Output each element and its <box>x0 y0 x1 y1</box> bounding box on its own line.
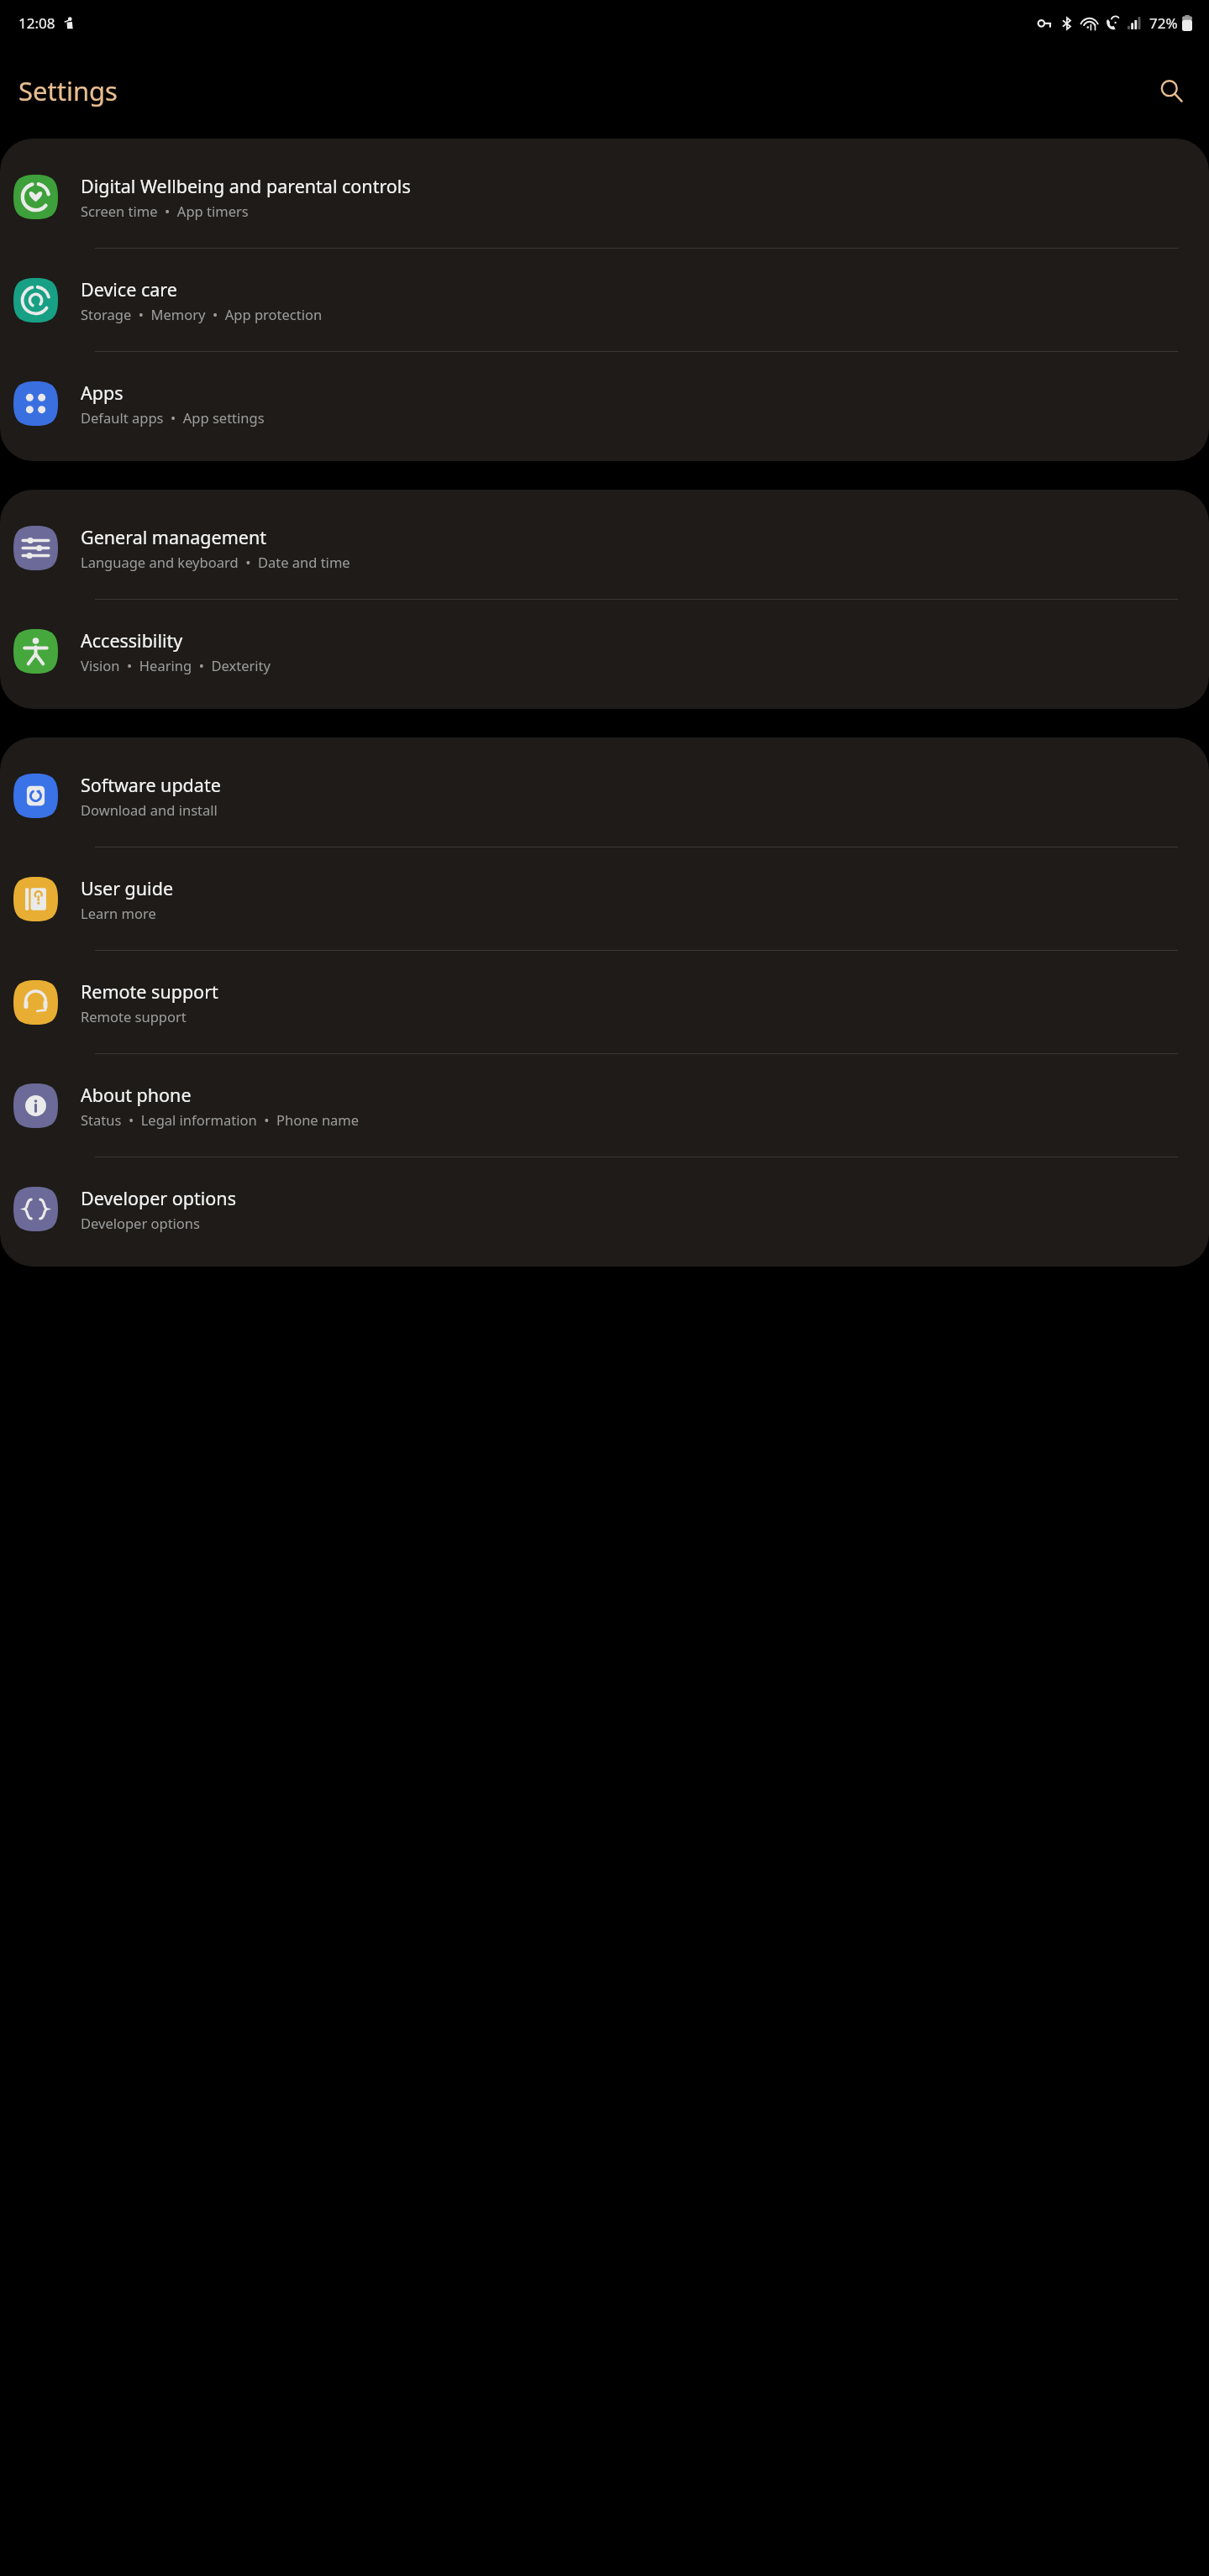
staticText: About phone <box>81 1083 192 1107</box>
button[interactable]: About phone <box>0 1054 1209 1157</box>
staticText: Remote support <box>81 979 218 1004</box>
staticText: General management <box>81 525 266 549</box>
staticText: Learn more <box>81 904 156 922</box>
button[interactable]: User guide <box>0 847 1209 951</box>
button[interactable]: Accessibility <box>0 600 1209 702</box>
button[interactable]: Search <box>1152 71 1191 110</box>
staticText: Vision • Hearing • Dexterity <box>81 656 271 674</box>
staticText: Status • Legal information • Phone name <box>81 1110 360 1129</box>
staticText: Developer options <box>81 1214 200 1232</box>
button[interactable]: Software update <box>0 744 1209 847</box>
button[interactable]: Digital Wellbeing and parental controls <box>0 145 1209 249</box>
button[interactable]: Developer options <box>0 1157 1209 1260</box>
staticText: Settings <box>18 73 118 108</box>
staticText: Accessibility <box>81 628 183 653</box>
staticText: Download and install <box>81 800 218 819</box>
staticText: 12:08 <box>18 13 55 33</box>
staticText: Remote support <box>81 1007 187 1026</box>
staticText: Apps <box>81 380 124 405</box>
staticText: Software update <box>81 773 221 797</box>
button[interactable]: General management <box>0 496 1209 600</box>
staticText: Storage • Memory • App protection <box>81 305 323 323</box>
staticText: 72% <box>1149 13 1178 33</box>
button[interactable]: Device care <box>0 249 1209 352</box>
staticText: Language and keyboard • Date and time <box>81 553 350 571</box>
button[interactable]: Apps <box>0 352 1209 454</box>
staticText: Digital Wellbeing and parental controls <box>81 174 411 198</box>
staticText: Developer options <box>81 1186 236 1210</box>
button[interactable]: Remote support <box>0 951 1209 1054</box>
staticText: Screen time • App timers <box>81 202 249 220</box>
staticText: User guide <box>81 876 174 900</box>
staticText: Device care <box>81 277 177 302</box>
staticText: Default apps • App settings <box>81 408 265 427</box>
